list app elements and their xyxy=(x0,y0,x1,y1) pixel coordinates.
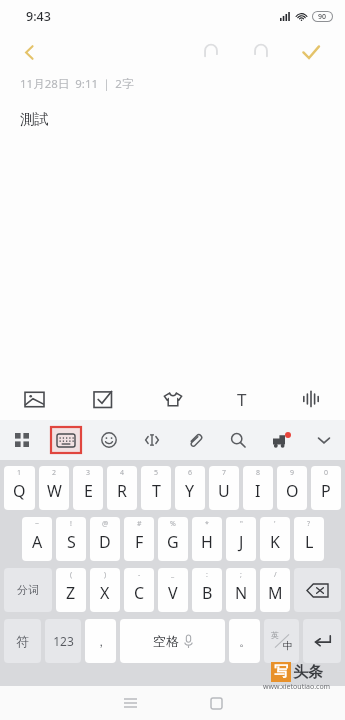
staticText: / xyxy=(274,570,277,580)
button[interactable]: 符 xyxy=(4,619,41,663)
button[interactable]: Done xyxy=(291,32,331,72)
staticText: * xyxy=(205,519,209,529)
button[interactable]: " xyxy=(226,517,256,561)
button[interactable]: 7 xyxy=(209,466,239,510)
button[interactable]: 5 xyxy=(141,466,171,510)
button[interactable]: 6 xyxy=(175,466,205,510)
button[interactable]: Apps xyxy=(0,420,44,460)
staticText: I xyxy=(255,480,261,502)
staticText: 头条 xyxy=(293,663,323,682)
button[interactable]: ! xyxy=(56,517,86,561)
button[interactable]: # xyxy=(124,517,154,561)
staticText: 90 xyxy=(318,12,327,21)
button[interactable]: : xyxy=(192,568,222,612)
staticText: _ xyxy=(171,570,175,580)
staticText: 写 xyxy=(274,663,288,681)
staticText: O xyxy=(286,480,299,502)
staticText: D xyxy=(99,531,111,553)
button[interactable]: ~ xyxy=(22,517,52,561)
button[interactable]: Search xyxy=(216,420,259,460)
button[interactable]: 123 xyxy=(45,619,81,663)
button[interactable]: Clipboard xyxy=(173,420,216,460)
staticText: 測試 xyxy=(20,110,49,128)
button[interactable]: Translate xyxy=(259,420,302,460)
button[interactable]: 0 xyxy=(311,466,341,510)
staticText: " xyxy=(240,519,243,529)
staticText: ( xyxy=(70,570,73,580)
staticText: 6 xyxy=(188,468,193,478)
button[interactable]: Audio xyxy=(276,378,345,420)
button[interactable]: Recents xyxy=(87,686,173,720)
staticText: ; xyxy=(240,570,242,580)
staticText: 1 xyxy=(17,468,22,478)
button[interactable]: 空格 xyxy=(120,619,225,663)
button[interactable]: Image xyxy=(0,378,69,420)
button[interactable]: 8 xyxy=(243,466,273,510)
button[interactable]: 。 xyxy=(229,619,260,663)
button[interactable]: Text format xyxy=(207,378,276,420)
staticText: 。 xyxy=(239,634,251,649)
staticText: 2 xyxy=(52,468,57,478)
staticText: ' xyxy=(274,519,276,529)
button[interactable]: Back xyxy=(10,33,48,71)
button[interactable]: - xyxy=(124,568,154,612)
button[interactable]: 4 xyxy=(107,466,137,510)
button[interactable]: Style xyxy=(138,378,207,420)
staticText: 3 xyxy=(86,468,91,478)
button[interactable]: Emoji xyxy=(87,420,130,460)
button[interactable]: ? xyxy=(294,517,324,561)
staticText: P xyxy=(321,480,331,502)
staticText: Q xyxy=(13,480,26,502)
button[interactable]: / xyxy=(260,568,290,612)
button[interactable]: Undo xyxy=(191,32,231,72)
staticText: 9:43 xyxy=(26,8,51,25)
staticText: 分词 xyxy=(17,583,39,597)
staticText: M xyxy=(268,582,283,604)
button[interactable]: Home xyxy=(173,686,259,720)
staticText: 英 xyxy=(271,630,279,640)
button[interactable]: 2 xyxy=(39,466,69,510)
button[interactable]: ; xyxy=(226,568,256,612)
staticText: R xyxy=(117,480,127,502)
staticText: 空格 xyxy=(153,633,179,649)
button[interactable]: Redo xyxy=(241,32,281,72)
staticText: ~ xyxy=(35,519,40,529)
button[interactable]: 分词 xyxy=(4,568,52,612)
staticText: ) xyxy=(104,570,107,580)
staticText: V xyxy=(168,582,178,604)
button[interactable]: _ xyxy=(158,568,188,612)
staticText: G xyxy=(167,531,179,553)
button[interactable]: ) xyxy=(90,568,120,612)
button[interactable]: Cursor xyxy=(130,420,173,460)
staticText: @ xyxy=(102,519,109,529)
staticText: ? xyxy=(307,519,311,529)
button[interactable]: Enter xyxy=(303,619,341,663)
staticText: X xyxy=(100,582,110,604)
button[interactable]: * xyxy=(192,517,222,561)
staticText: Z xyxy=(66,582,76,604)
button[interactable]: @ xyxy=(90,517,120,561)
staticText: ， xyxy=(95,634,107,649)
staticText: ! xyxy=(70,519,72,529)
staticText: U xyxy=(218,480,230,502)
button[interactable]: 9 xyxy=(277,466,307,510)
staticText: % xyxy=(170,519,176,529)
button[interactable]: Checklist xyxy=(69,378,138,420)
button[interactable]: ， xyxy=(85,619,116,663)
button[interactable]: ' xyxy=(260,517,290,561)
staticText: 0 xyxy=(324,468,329,478)
button[interactable]: ( xyxy=(56,568,86,612)
staticText: L xyxy=(305,531,314,553)
staticText: # xyxy=(137,519,142,529)
button[interactable]: 1 xyxy=(4,466,35,510)
staticText: C xyxy=(134,582,145,604)
staticText: 9 xyxy=(290,468,295,478)
button[interactable]: % xyxy=(158,517,188,561)
staticText: S xyxy=(67,531,76,553)
button[interactable]: Keyboard xyxy=(44,420,87,460)
button[interactable]: Switch language xyxy=(264,619,299,663)
button[interactable]: Collapse xyxy=(302,420,345,460)
button[interactable]: 3 xyxy=(73,466,103,510)
staticText: 中 xyxy=(283,639,293,652)
button[interactable]: Backspace xyxy=(294,568,341,612)
